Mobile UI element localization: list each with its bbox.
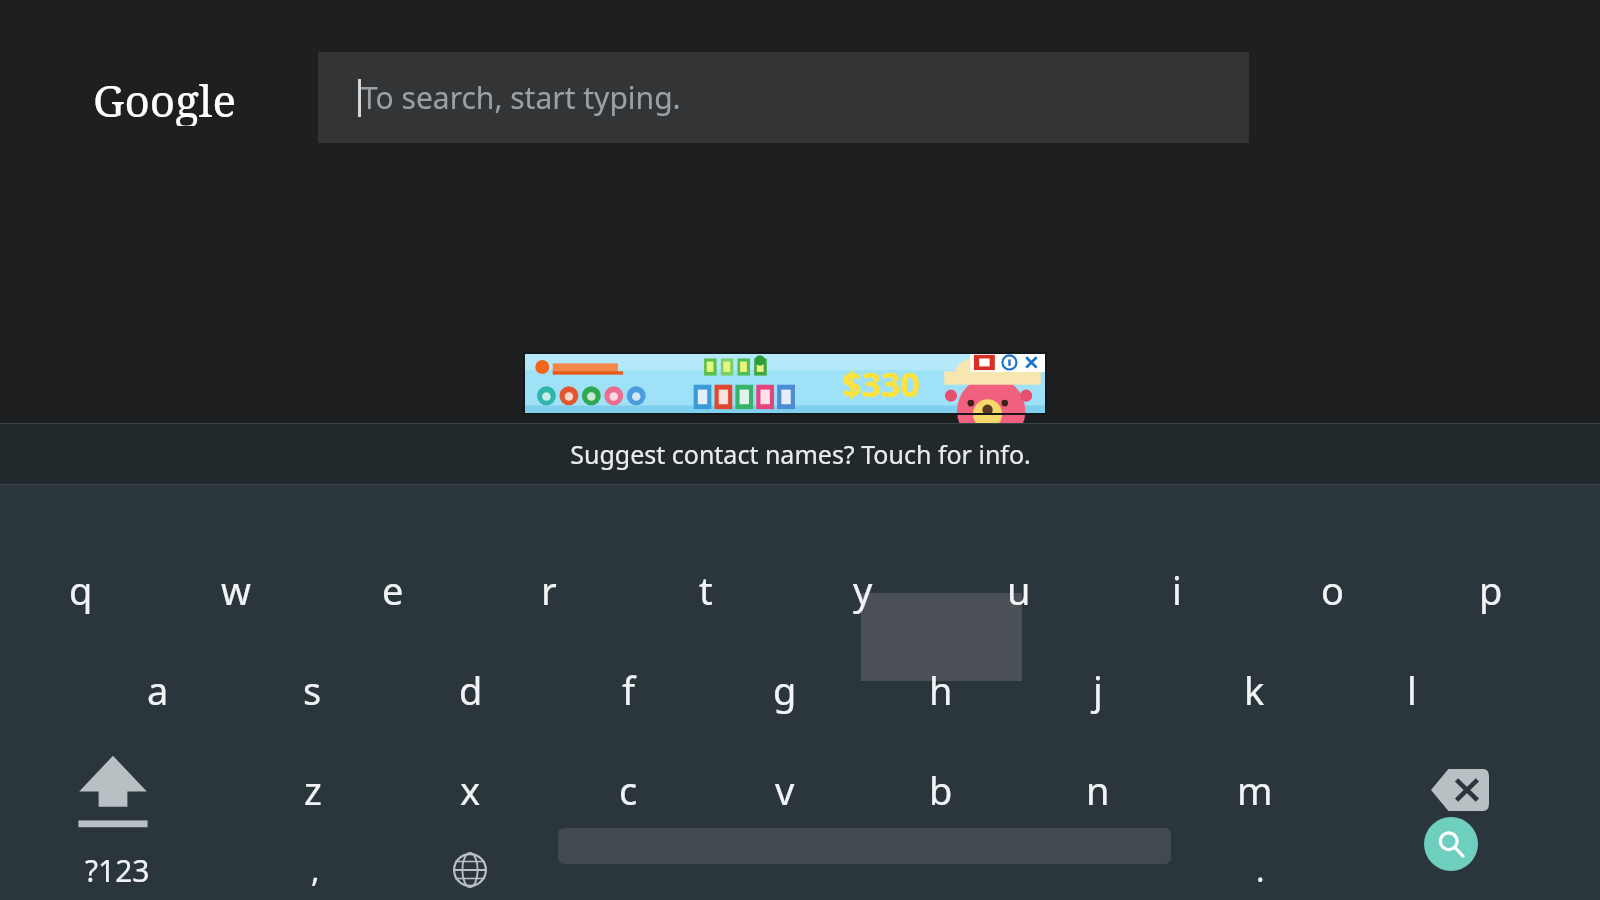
staticText: x	[460, 764, 481, 816]
button[interactable]: i	[1098, 540, 1255, 640]
button[interactable]: Backspace	[1385, 740, 1535, 840]
button[interactable]: Search	[1424, 817, 1478, 871]
button[interactable]: z	[234, 740, 391, 840]
button[interactable]: b	[862, 740, 1019, 840]
button[interactable]: e	[314, 540, 471, 640]
staticText: k	[1244, 664, 1265, 716]
staticText: h	[929, 664, 953, 716]
button[interactable]: y	[784, 540, 941, 640]
staticText: l	[1407, 664, 1417, 716]
button[interactable]: m	[1176, 740, 1333, 840]
button[interactable]: q	[2, 540, 159, 640]
staticText: Google	[93, 70, 237, 126]
staticText: v	[775, 764, 795, 816]
staticText: b	[929, 764, 953, 816]
button[interactable]: Shift	[35, 740, 190, 840]
button[interactable]: x	[392, 740, 549, 840]
button[interactable]: o	[1254, 540, 1411, 640]
staticText: u	[1007, 564, 1031, 616]
staticText: r	[541, 564, 557, 616]
button[interactable]: t	[627, 540, 784, 640]
staticText: f	[622, 664, 636, 716]
staticText: m	[1237, 764, 1273, 816]
staticText: ,	[311, 848, 320, 892]
staticText: e	[382, 564, 404, 616]
button[interactable]: r	[470, 540, 627, 640]
staticText: q	[69, 564, 93, 616]
button[interactable]: c	[550, 740, 707, 840]
staticText: n	[1086, 764, 1110, 816]
button[interactable]: f	[550, 640, 707, 740]
staticText: s	[303, 664, 322, 716]
staticText: g	[773, 664, 797, 716]
button[interactable]: .	[1195, 840, 1325, 900]
staticText: w	[221, 564, 251, 616]
button[interactable]: p	[1412, 540, 1569, 640]
staticText: ?123	[85, 850, 150, 891]
staticText: .	[1256, 848, 1265, 892]
staticText: Suggest contact names? Touch for info.	[570, 437, 1031, 471]
button[interactable]: a	[79, 640, 236, 740]
button[interactable]: To search, start typing.	[318, 52, 1249, 143]
button[interactable]: l	[1333, 640, 1490, 740]
button[interactable]: d	[392, 640, 549, 740]
button[interactable]: n	[1019, 740, 1176, 840]
button[interactable]: g	[706, 640, 863, 740]
button[interactable]: $330	[524, 353, 1046, 414]
button[interactable]: Suggest contact names? Touch for info.	[0, 423, 1600, 485]
staticText: a	[147, 664, 169, 716]
staticText: j	[1093, 664, 1103, 716]
staticText: To search, start typing.	[361, 77, 681, 118]
staticText: t	[699, 564, 713, 616]
button[interactable]: ?123	[40, 840, 195, 900]
staticText: $330	[842, 361, 920, 407]
button[interactable]: s	[234, 640, 391, 740]
staticText: p	[1479, 564, 1503, 616]
button[interactable]: w	[157, 540, 314, 640]
button[interactable]: Change keyboard language	[400, 840, 540, 900]
staticText: y	[853, 564, 873, 616]
button[interactable]: ,	[240, 840, 390, 900]
button[interactable]: k	[1176, 640, 1333, 740]
button[interactable]: h	[862, 640, 1019, 740]
staticText: d	[459, 664, 483, 716]
staticText: i	[1172, 564, 1182, 616]
button[interactable]: v	[706, 740, 863, 840]
button[interactable]: u	[940, 540, 1097, 640]
staticText: z	[304, 764, 322, 816]
button[interactable]: j	[1019, 640, 1176, 740]
staticText: o	[1321, 564, 1344, 616]
button[interactable]: Google	[93, 70, 243, 126]
staticText: c	[619, 764, 638, 816]
